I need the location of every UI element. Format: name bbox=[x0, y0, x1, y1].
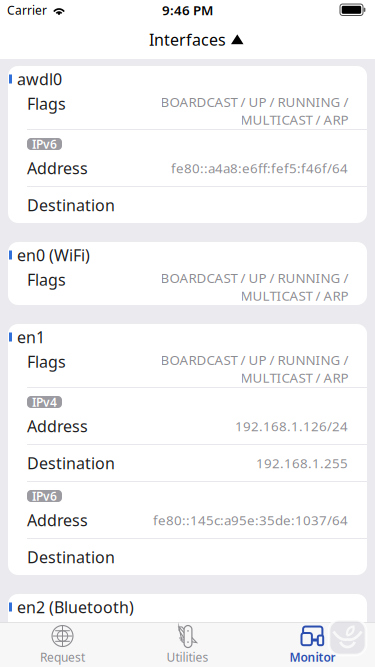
staticText: IPv6 bbox=[32, 136, 57, 152]
staticText: en2 (Bluetooth) bbox=[17, 596, 134, 618]
staticText: BOARDCAST / UP / RUNNING / MULTICAST / A… bbox=[160, 621, 348, 656]
button[interactable]: Request bbox=[0, 620, 125, 667]
staticText: Utilities bbox=[166, 649, 208, 665]
staticText: 192.168.1.255 bbox=[256, 454, 348, 472]
staticText: IPv4 bbox=[32, 394, 57, 410]
staticText: awdl0 bbox=[17, 68, 62, 90]
staticText: Address bbox=[27, 509, 88, 531]
staticText: Carrier bbox=[7, 2, 47, 18]
staticText: BOARDCAST / UP / RUNNING / MULTICAST / A… bbox=[160, 269, 348, 304]
staticText: Monitor bbox=[289, 649, 335, 665]
staticText: Destination bbox=[27, 452, 115, 474]
staticText: BOARDCAST / UP / RUNNING / MULTICAST / A… bbox=[160, 93, 348, 128]
staticText: Flags bbox=[27, 351, 66, 372]
staticText: Flags bbox=[27, 93, 66, 114]
staticText: en0 (WiFi) bbox=[17, 244, 90, 266]
button[interactable]: Interfaces bbox=[0, 20, 375, 59]
staticText: 9:46 PM bbox=[162, 1, 213, 19]
button[interactable]: Monitor bbox=[250, 620, 375, 667]
staticText: 192.168.1.126/24 bbox=[235, 417, 348, 435]
staticText: Request bbox=[40, 649, 85, 665]
staticText: fe80::145c:a95e:35de:1037/64 bbox=[153, 511, 348, 529]
staticText: Address bbox=[27, 157, 88, 179]
staticText: Destination bbox=[27, 546, 115, 568]
staticText: Flags bbox=[27, 269, 66, 290]
staticText: Address bbox=[27, 415, 88, 437]
staticText: BOARDCAST / UP / RUNNING / MULTICAST / A… bbox=[160, 351, 348, 386]
staticText: Flags bbox=[27, 621, 66, 642]
staticText: Interfaces bbox=[149, 29, 226, 50]
staticText: IPv6 bbox=[32, 488, 57, 504]
button[interactable]: Utilities bbox=[125, 620, 250, 667]
staticText: Destination bbox=[27, 194, 115, 216]
staticText: fe80::a4a8:e6ff:fef5:f46f/64 bbox=[171, 159, 348, 177]
staticText: en1 bbox=[17, 326, 45, 348]
